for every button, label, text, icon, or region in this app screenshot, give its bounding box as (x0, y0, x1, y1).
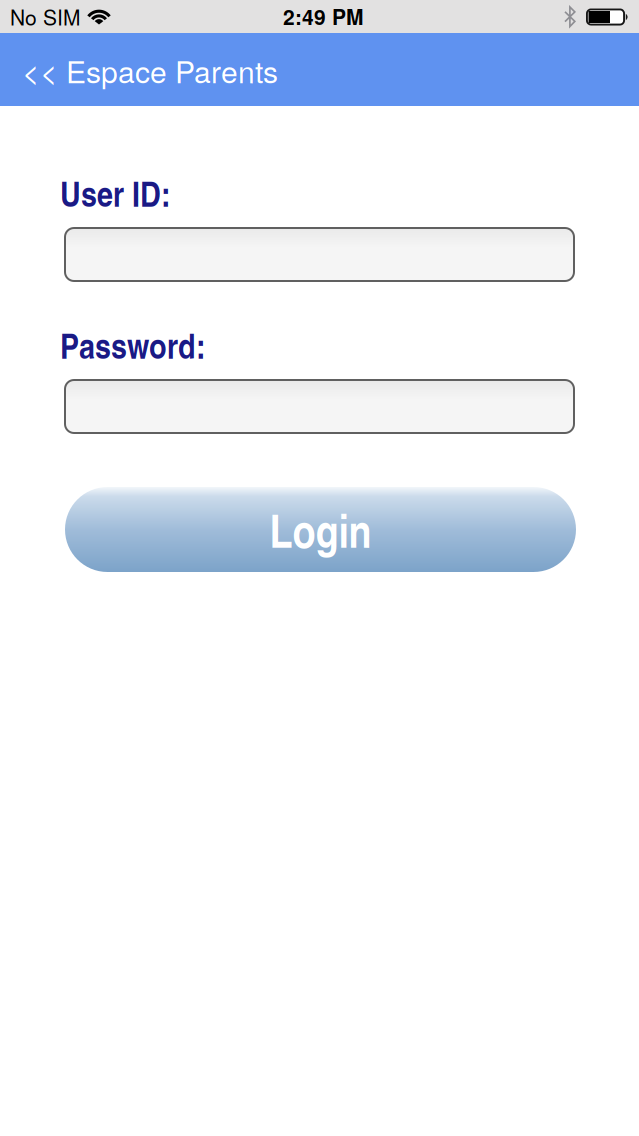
staticText: No SIM (10, 1, 80, 32)
staticText: Password: (60, 320, 206, 369)
staticText: << Espace Parents (22, 49, 278, 92)
button[interactable]: User ID (64, 227, 575, 282)
staticText: 2:49 PM (283, 1, 363, 32)
button[interactable]: Login (65, 487, 576, 572)
button[interactable]: Password (64, 379, 575, 434)
staticText: Login (269, 497, 371, 562)
button[interactable]: << Espace Parents (22, 49, 278, 92)
staticText: User ID: (60, 168, 171, 217)
